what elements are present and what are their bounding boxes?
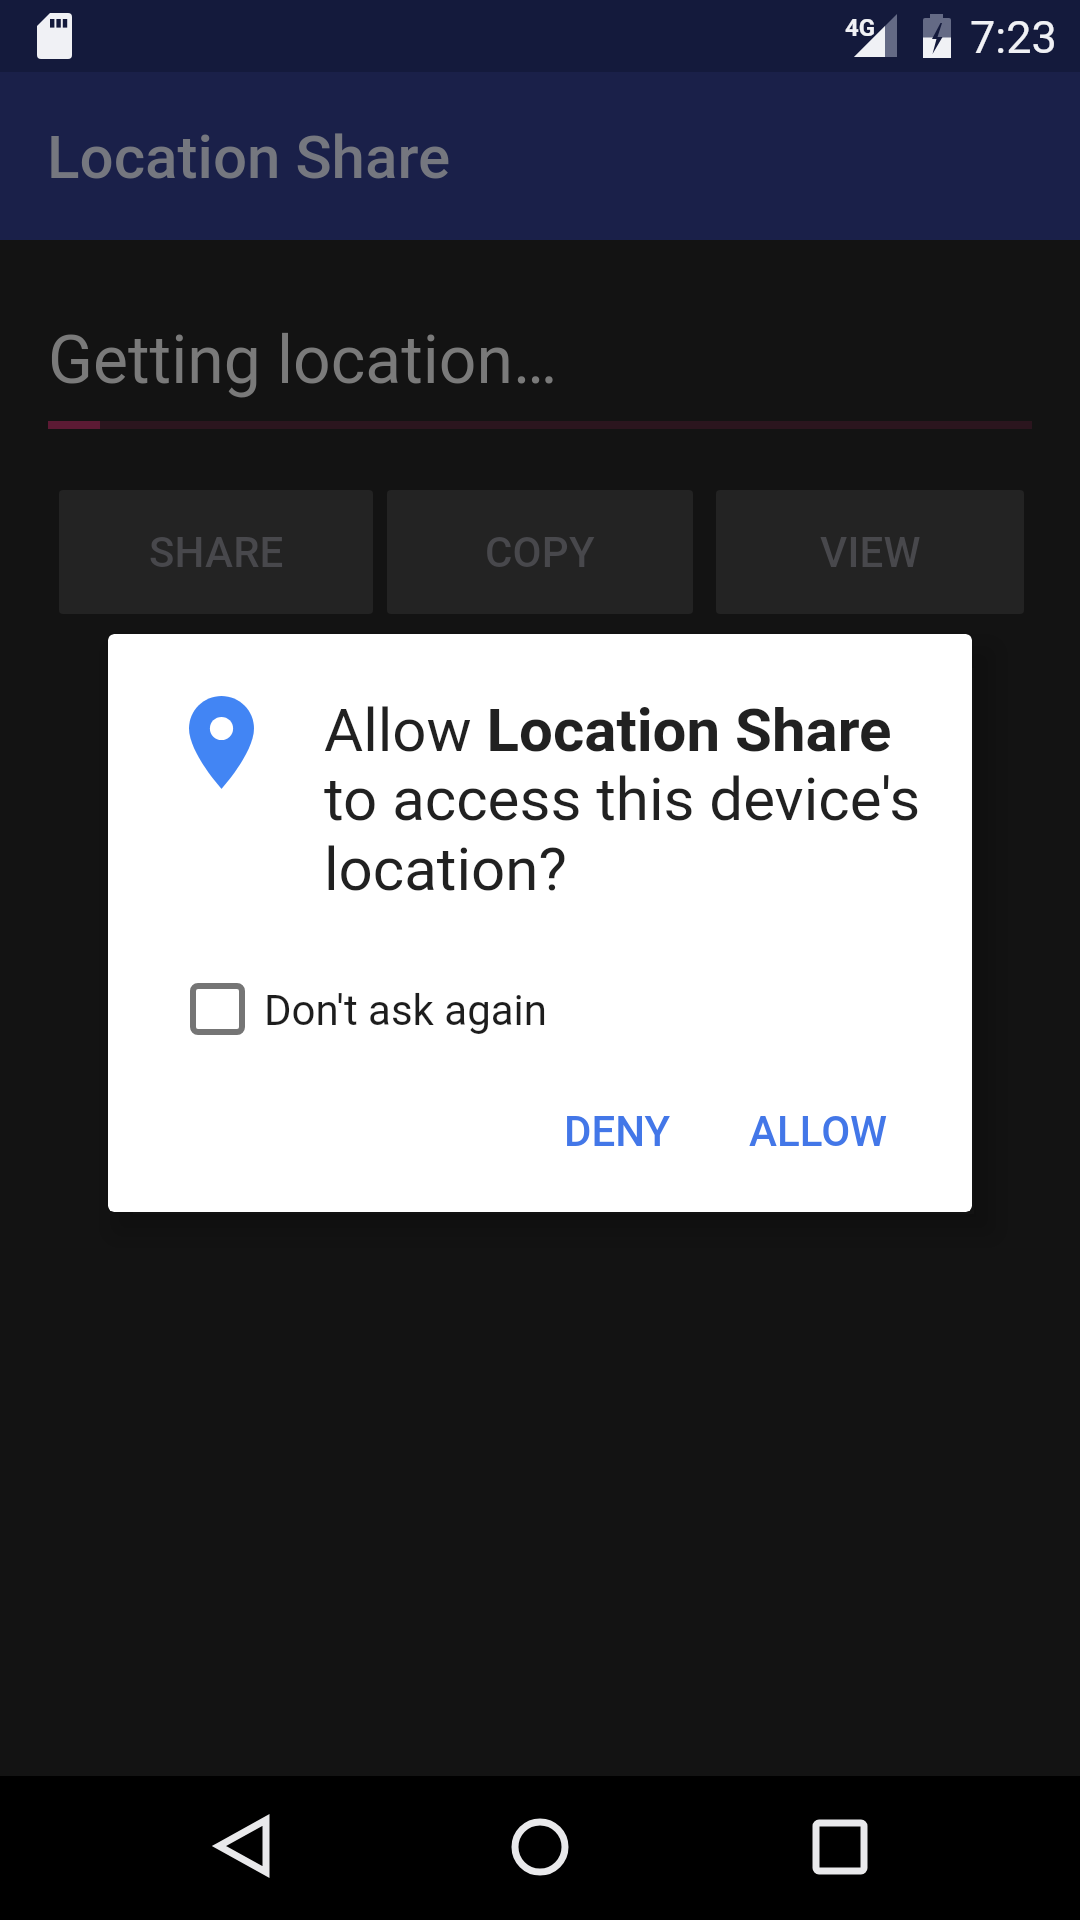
staticText: VIEW bbox=[820, 528, 921, 577]
button[interactable]: DENY bbox=[537, 1086, 697, 1176]
button[interactable] bbox=[768, 1776, 912, 1920]
button[interactable]: COPY bbox=[387, 490, 693, 614]
button[interactable]: SHARE bbox=[59, 490, 373, 614]
staticText: SHARE bbox=[149, 528, 284, 577]
staticText: Location Share bbox=[47, 122, 451, 192]
button[interactable] bbox=[170, 1776, 314, 1920]
staticText: Allow Location Share to access this devi… bbox=[324, 695, 921, 905]
staticText: Getting location… bbox=[48, 322, 558, 399]
staticText: ALLOW bbox=[749, 1107, 888, 1156]
staticText: Don't ask again bbox=[264, 986, 547, 1035]
staticText: COPY bbox=[485, 528, 595, 577]
button[interactable]: Don't ask again bbox=[190, 983, 653, 1035]
staticText: 4G bbox=[845, 14, 876, 42]
staticText: DENY bbox=[564, 1107, 671, 1156]
staticText: 7:23 bbox=[970, 11, 1057, 64]
button[interactable]: ALLOW bbox=[718, 1086, 918, 1176]
button[interactable]: VIEW bbox=[716, 490, 1024, 614]
button[interactable] bbox=[468, 1776, 612, 1920]
